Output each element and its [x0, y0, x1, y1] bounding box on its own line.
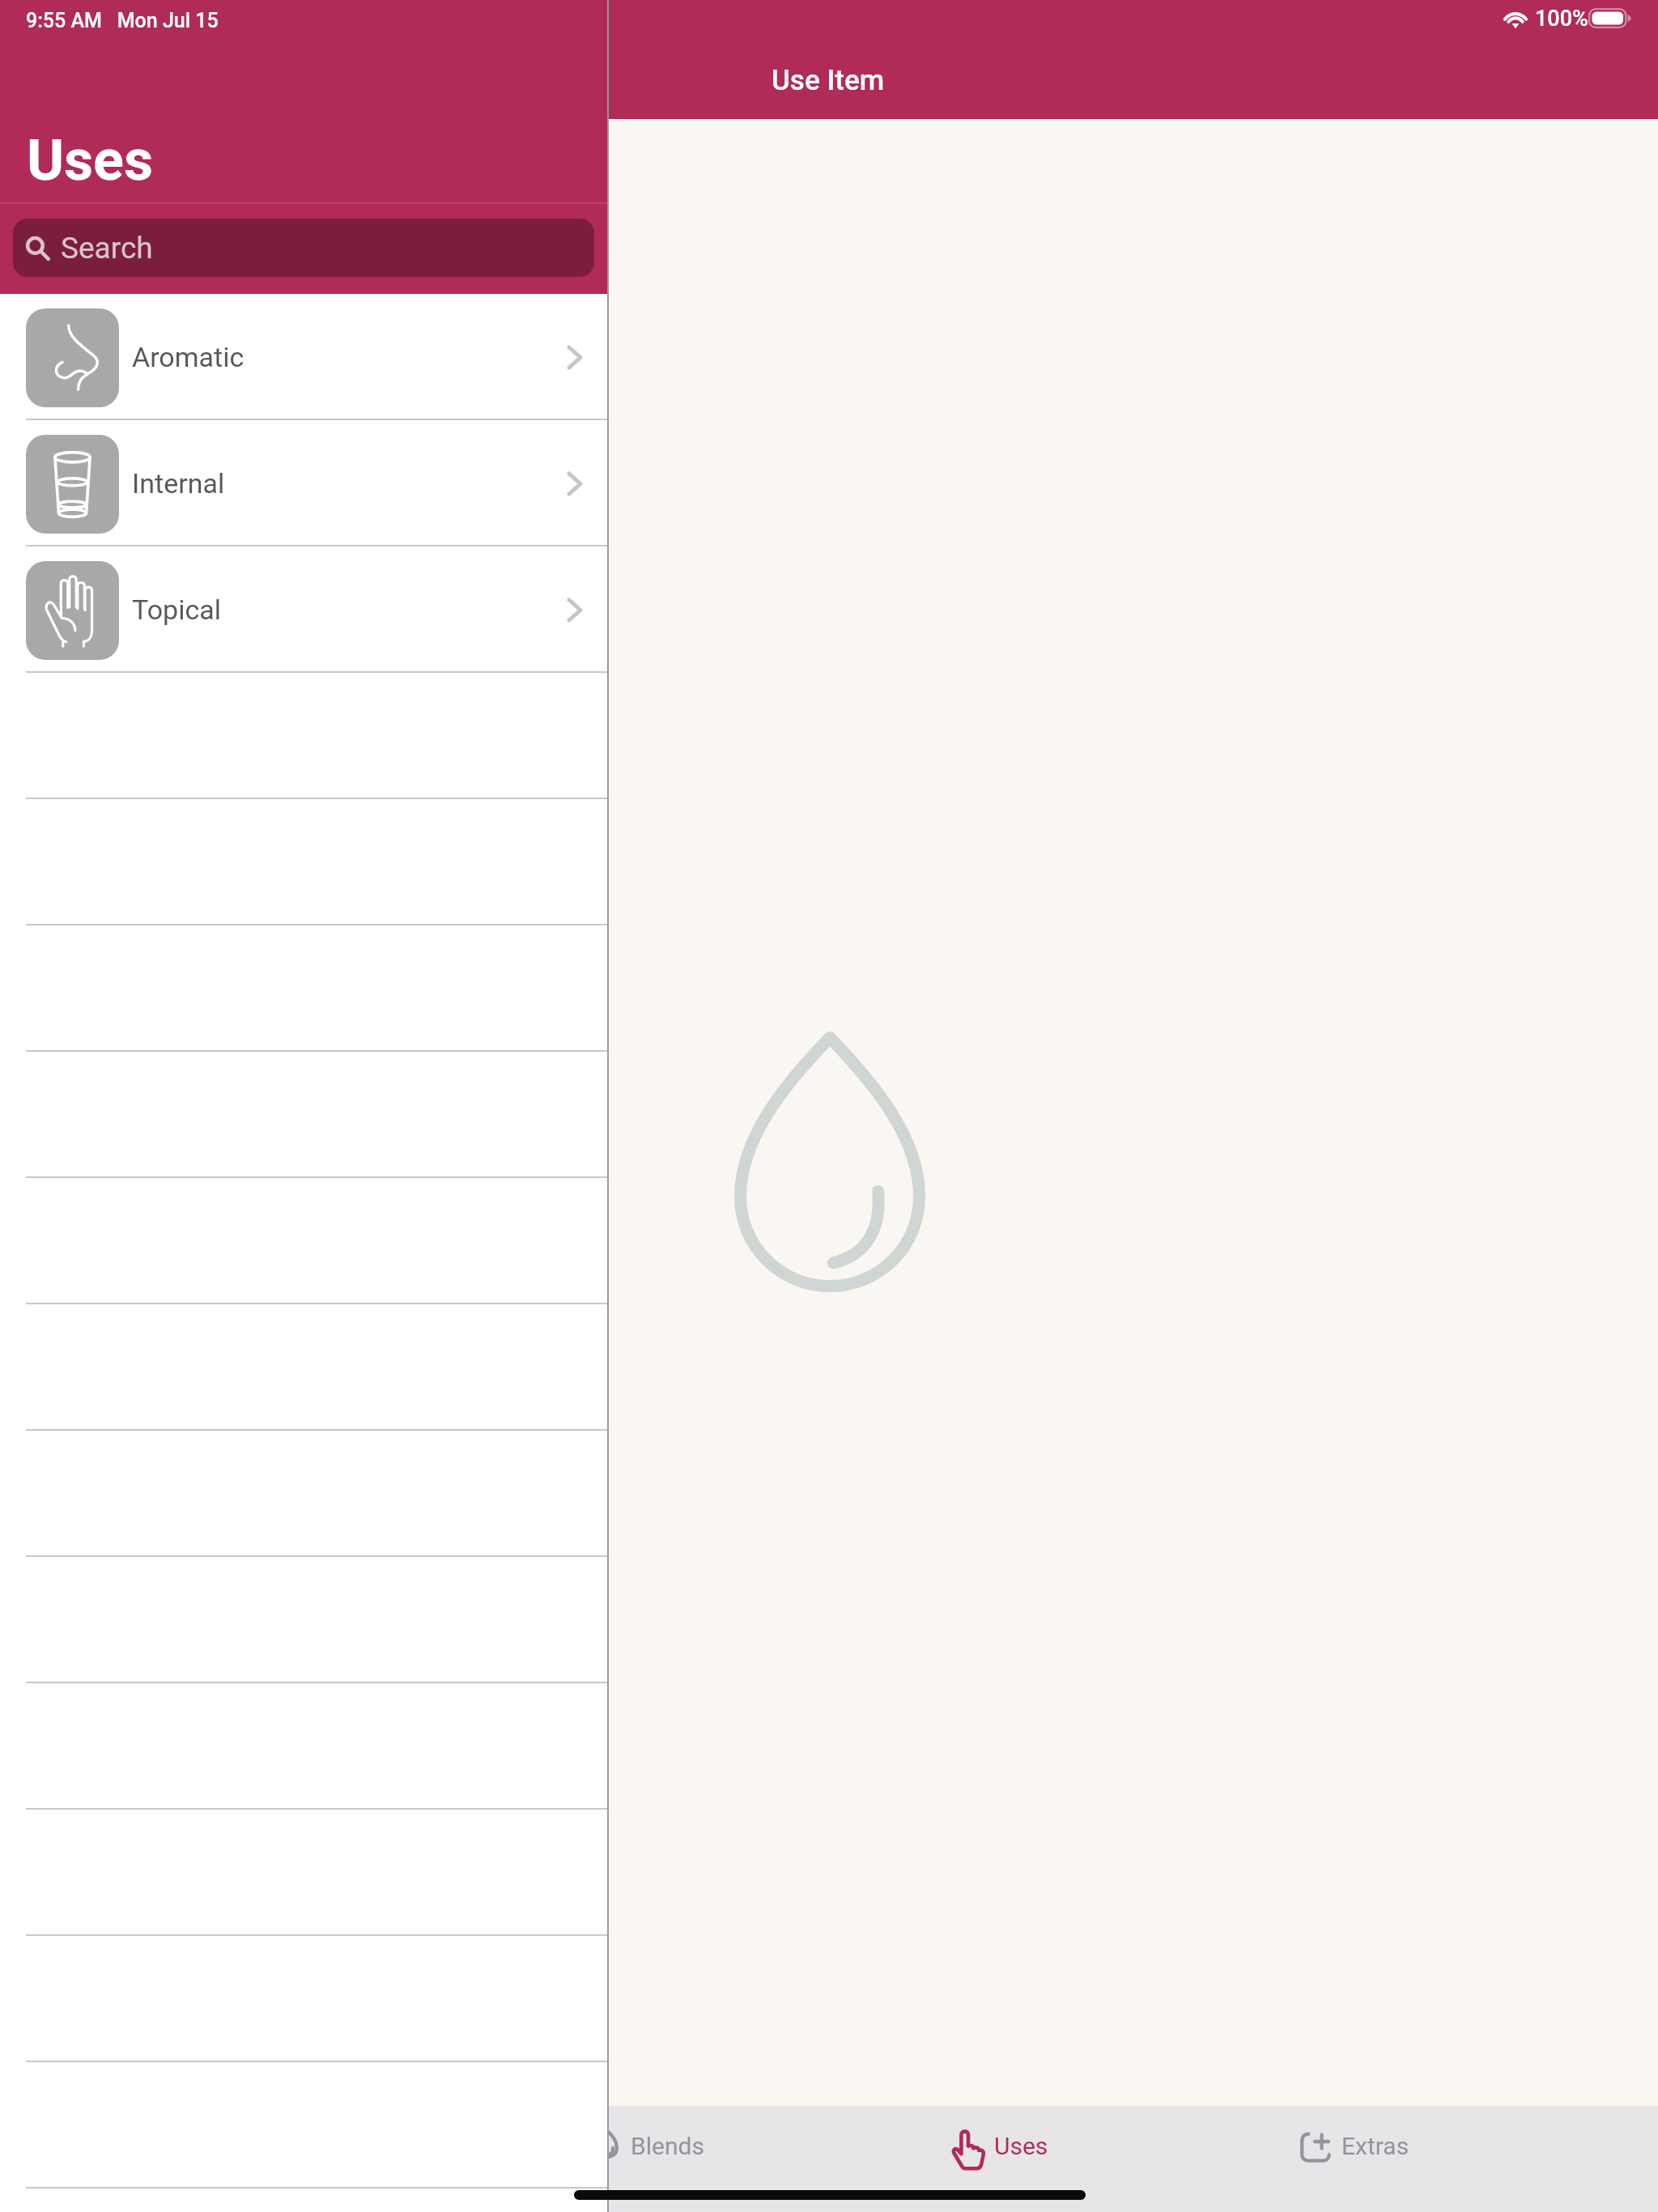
button[interactable]: Uses [903, 2106, 1114, 2212]
staticText: Uses [27, 127, 153, 194]
button[interactable]: Topical [0, 547, 607, 673]
staticText: Topical [132, 593, 221, 626]
staticText: Search [61, 231, 153, 266]
staticText: 9:55 AM Mon Jul 15 [26, 9, 219, 32]
button[interactable]: Blends [550, 2106, 760, 2212]
button[interactable]: Internal [0, 420, 607, 547]
staticText: Use Item [772, 64, 885, 97]
button[interactable]: Aromatic [0, 294, 607, 420]
staticText: Internal [132, 467, 225, 500]
staticText: 100% [1535, 6, 1588, 32]
button[interactable]: Extras [1252, 2106, 1463, 2212]
button[interactable]: Search [13, 219, 594, 277]
staticText: Blends [631, 2132, 704, 2160]
staticText: Extras [1341, 2132, 1409, 2160]
staticText: Uses [994, 2132, 1048, 2160]
staticText: Aromatic [132, 341, 244, 373]
